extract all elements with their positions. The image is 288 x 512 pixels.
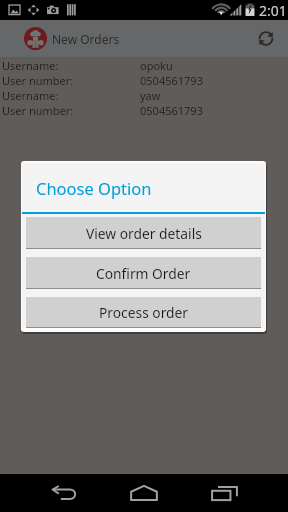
staticText: New Orders	[52, 31, 120, 47]
button[interactable]: User number:	[0, 73, 288, 88]
button[interactable]: Username:	[0, 58, 288, 73]
staticText: opoku	[140, 58, 173, 73]
button[interactable]: Home	[114, 474, 174, 512]
staticText: User number:	[2, 73, 74, 88]
staticText: Username:	[2, 88, 59, 103]
button[interactable]: Process order	[26, 297, 261, 328]
button[interactable]: Back	[34, 474, 94, 512]
button[interactable]: View order details	[26, 217, 261, 249]
staticText: 0504561793	[140, 73, 203, 88]
button[interactable]: User number:	[0, 103, 288, 118]
staticText: Choose Option	[36, 177, 152, 199]
staticText: View order details	[86, 224, 202, 243]
button[interactable]: Recent apps	[194, 474, 254, 512]
staticText: 2:01	[259, 1, 287, 20]
staticText: yaw	[140, 88, 161, 103]
staticText: 0504561793	[140, 103, 203, 118]
staticText: Username:	[2, 58, 59, 73]
button[interactable]: Username:	[0, 88, 288, 103]
staticText: User number:	[2, 103, 74, 118]
staticText: Confirm Order	[96, 264, 191, 283]
staticText: Process order	[99, 303, 189, 322]
button[interactable]: Confirm Order	[26, 257, 261, 289]
button[interactable]: Refresh	[245, 20, 287, 57]
